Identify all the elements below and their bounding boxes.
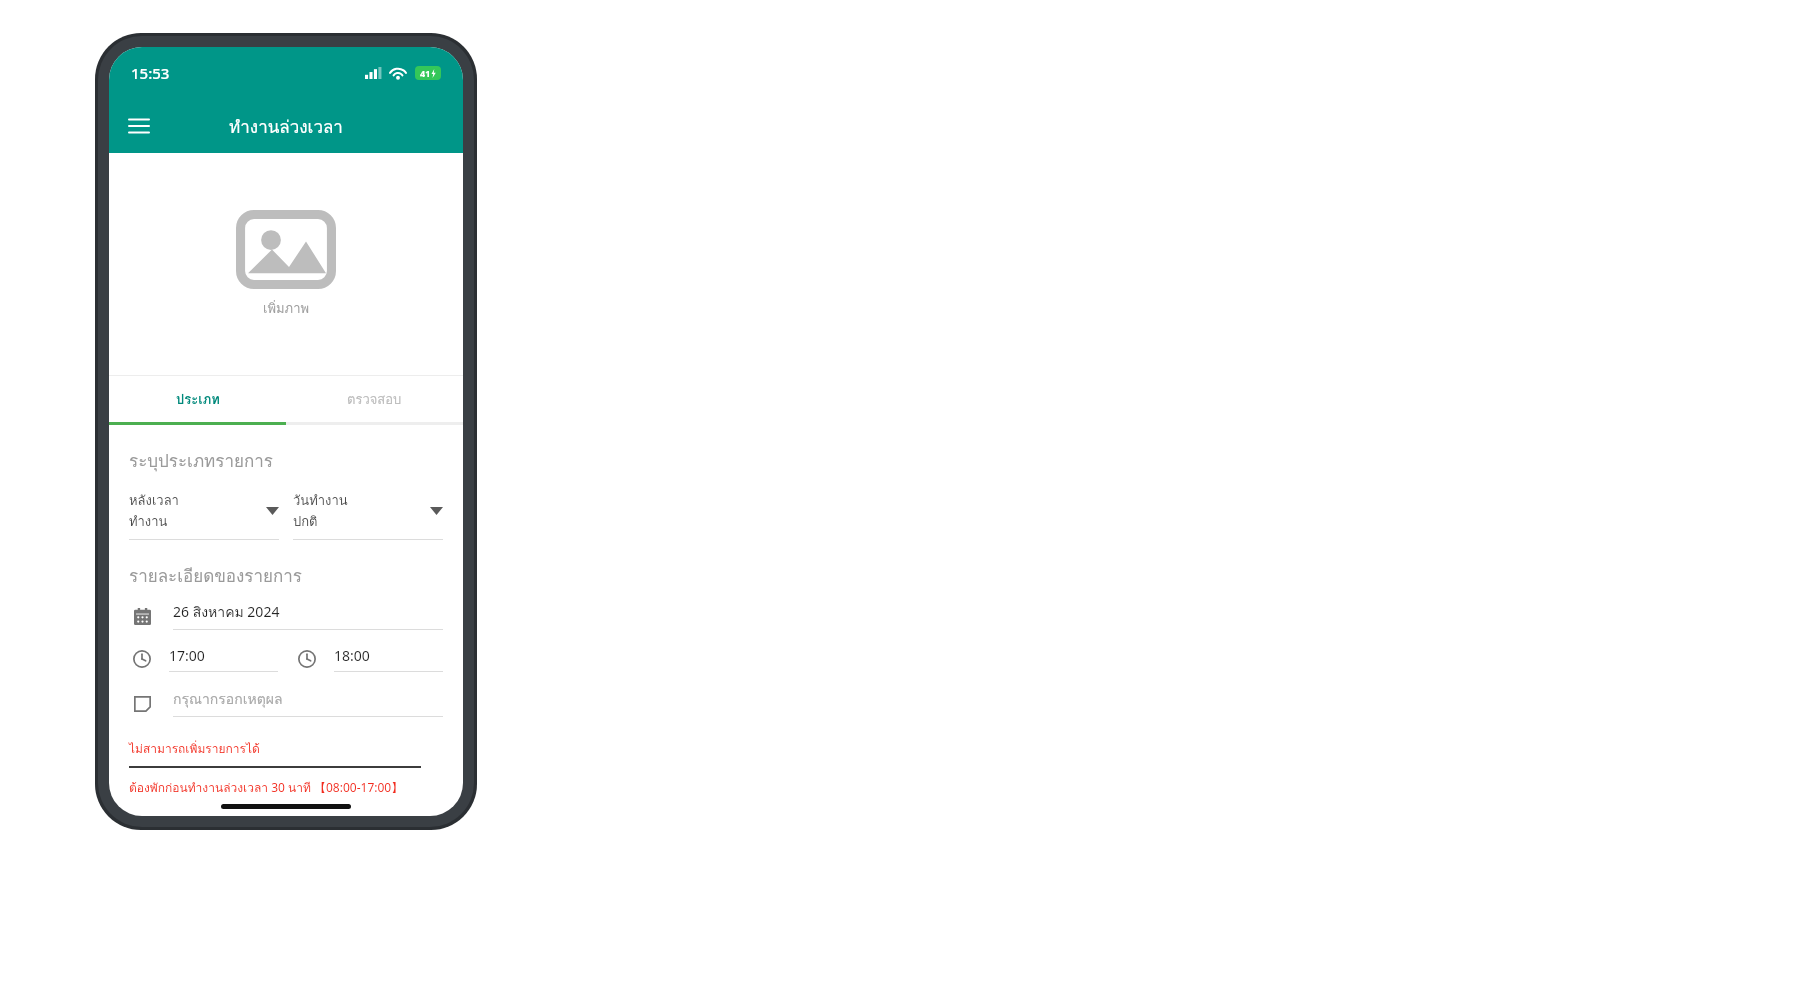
staticText: ต้องพักก่อนทำงานล่วงเวลา 30 นาที 【08:00-… (129, 778, 404, 797)
staticText: วันทำงานปกติ (293, 490, 361, 532)
button[interactable]: เพิ่มภาพ (236, 210, 336, 319)
staticText: ไม่สามารถเพิ่มรายการได้ (129, 739, 260, 758)
button[interactable]: หลังเวลาทำงาน (129, 490, 279, 540)
button[interactable]: 26 สิงหาคม 2024 (129, 601, 443, 630)
button[interactable]: 18:00 (294, 646, 443, 672)
staticText: รายละเอียดของรายการ (129, 562, 302, 589)
button[interactable]: 17:00 (129, 646, 278, 672)
staticText: 15:53 (131, 63, 170, 83)
button[interactable]: วันทำงานปกติ (293, 490, 443, 540)
staticText: ทำงานล่วงเวลา (229, 113, 343, 140)
staticText: 26 สิงหาคม 2024 (173, 601, 280, 623)
staticText: ประเภท (176, 389, 220, 410)
staticText: กรุณากรอกเหตุผล (173, 688, 283, 710)
button[interactable]: กรุณากรอกเหตุผล (129, 688, 443, 717)
staticText: เพิ่มภาพ (263, 298, 310, 319)
staticText: ระบุประเภทรายการ (129, 447, 273, 474)
button[interactable]: ตรวจสอบ (286, 376, 463, 422)
staticText: 18:00 (334, 646, 370, 665)
staticText: หลังเวลาทำงาน (129, 490, 197, 532)
staticText: 41 (420, 67, 431, 79)
staticText: 17:00 (169, 646, 205, 665)
staticText: ตรวจสอบ (347, 389, 402, 410)
button[interactable]: ประเภท (109, 376, 286, 422)
button[interactable]: Menu (119, 106, 159, 146)
